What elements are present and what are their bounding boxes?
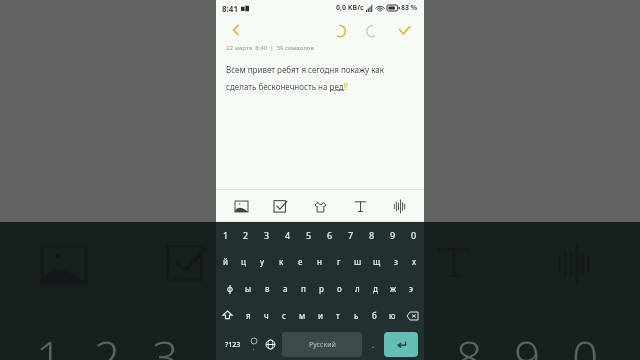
button[interactable]: Русский bbox=[282, 332, 362, 357]
button[interactable]: я bbox=[239, 302, 257, 329]
staticText: 8 bbox=[456, 326, 483, 360]
staticText: 1 bbox=[223, 229, 229, 241]
staticText: ж bbox=[390, 283, 397, 294]
staticText: ь bbox=[354, 310, 359, 321]
staticText: й bbox=[223, 256, 228, 267]
button[interactable]: с bbox=[275, 302, 293, 329]
staticText: 4 bbox=[285, 229, 291, 241]
staticText: я bbox=[246, 310, 251, 321]
button[interactable]: Redo bbox=[360, 18, 384, 42]
button[interactable]: 2 bbox=[236, 222, 256, 248]
button[interactable]: ф bbox=[220, 275, 239, 302]
button[interactable]: э bbox=[402, 275, 420, 302]
staticText: . bbox=[372, 339, 375, 350]
staticText: 7 bbox=[348, 229, 354, 241]
staticText: в bbox=[265, 283, 270, 294]
staticText: э bbox=[409, 283, 413, 294]
button[interactable]: ?123 bbox=[220, 332, 245, 357]
button[interactable]: б bbox=[365, 302, 383, 329]
button[interactable]: 0 bbox=[403, 222, 424, 248]
button[interactable]: Text format bbox=[345, 191, 375, 221]
button[interactable]: 9 bbox=[382, 222, 403, 248]
button[interactable]: ж bbox=[384, 275, 402, 302]
button[interactable]: а bbox=[276, 275, 294, 302]
staticText: ч bbox=[264, 310, 269, 321]
staticText: 2 bbox=[94, 326, 121, 360]
button[interactable]: й bbox=[216, 248, 234, 275]
button[interactable]: к bbox=[272, 248, 291, 275]
button[interactable]: . bbox=[365, 332, 382, 357]
staticText: Всем привет ребят я сегодня покажу как с… bbox=[226, 64, 414, 92]
staticText: н bbox=[317, 256, 322, 267]
button[interactable]: Voice note bbox=[384, 191, 414, 221]
button[interactable]: ь bbox=[347, 302, 365, 329]
button[interactable]: м bbox=[293, 302, 311, 329]
staticText: ц bbox=[241, 256, 246, 267]
staticText: т bbox=[336, 310, 340, 321]
button[interactable]: Insert image bbox=[226, 191, 256, 221]
button[interactable]: з bbox=[386, 248, 405, 275]
button[interactable]: 8 bbox=[361, 222, 382, 248]
button[interactable]: д bbox=[366, 275, 384, 302]
button[interactable]: ы bbox=[239, 275, 258, 302]
button[interactable]: Backspace bbox=[401, 302, 424, 329]
staticText: 5 bbox=[306, 229, 312, 241]
button[interactable]: Undo bbox=[328, 18, 352, 42]
button[interactable]: ш bbox=[348, 248, 367, 275]
button[interactable]: е bbox=[291, 248, 310, 275]
button[interactable]: Shift bbox=[216, 302, 239, 329]
button[interactable]: г bbox=[329, 248, 348, 275]
staticText: б bbox=[372, 310, 377, 321]
staticText: а bbox=[283, 283, 288, 294]
button[interactable]: Done bbox=[392, 18, 416, 42]
staticText: г bbox=[337, 256, 341, 267]
staticText: о bbox=[337, 283, 342, 294]
button[interactable]: 5 bbox=[298, 222, 319, 248]
button[interactable]: Style bbox=[305, 191, 335, 221]
button[interactable]: ю bbox=[383, 302, 401, 329]
button[interactable]: ц bbox=[234, 248, 253, 275]
button[interactable]: у bbox=[253, 248, 272, 275]
staticText: 2 bbox=[243, 229, 249, 241]
button[interactable]: в bbox=[258, 275, 276, 302]
staticText: ю bbox=[389, 310, 396, 321]
staticText: р bbox=[319, 283, 324, 294]
staticText: к bbox=[279, 256, 284, 267]
button[interactable]: 1 bbox=[216, 222, 236, 248]
button[interactable]: л bbox=[348, 275, 366, 302]
staticText: з bbox=[394, 256, 398, 267]
button[interactable]: Emoji bbox=[245, 332, 262, 357]
button[interactable]: Checklist bbox=[265, 191, 295, 221]
staticText: ы bbox=[245, 283, 252, 294]
staticText: ш bbox=[354, 256, 362, 267]
button[interactable]: 4 bbox=[277, 222, 298, 248]
button[interactable]: н bbox=[310, 248, 329, 275]
button[interactable]: 3 bbox=[256, 222, 277, 248]
staticText: 0 bbox=[411, 229, 417, 241]
button[interactable]: ч bbox=[257, 302, 275, 329]
button[interactable]: Enter bbox=[384, 332, 418, 357]
staticText: 1 bbox=[36, 326, 63, 360]
button[interactable]: х bbox=[405, 248, 424, 275]
button[interactable]: Change language bbox=[262, 332, 279, 357]
staticText: 83 % bbox=[401, 3, 418, 13]
staticText: л bbox=[355, 283, 360, 294]
staticText: е bbox=[298, 256, 303, 267]
staticText: д bbox=[373, 283, 378, 294]
staticText: Русский bbox=[309, 340, 336, 350]
button[interactable]: п bbox=[294, 275, 312, 302]
button[interactable]: т bbox=[329, 302, 347, 329]
staticText: у bbox=[260, 256, 265, 267]
button[interactable]: Back bbox=[224, 18, 248, 42]
staticText: м bbox=[299, 310, 306, 321]
button[interactable]: 6 bbox=[319, 222, 340, 248]
button[interactable]: щ bbox=[367, 248, 386, 275]
staticText: щ bbox=[373, 256, 381, 267]
button[interactable]: 7 bbox=[340, 222, 361, 248]
staticText: 3 bbox=[152, 326, 179, 360]
button[interactable]: и bbox=[311, 302, 329, 329]
button[interactable]: о bbox=[330, 275, 348, 302]
staticText: 0,0 KB/c bbox=[336, 3, 364, 13]
staticText: 8 bbox=[369, 229, 375, 241]
button[interactable]: р bbox=[312, 275, 330, 302]
